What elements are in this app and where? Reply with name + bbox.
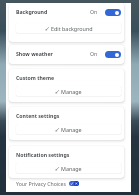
staticText: Notification settings — [16, 151, 70, 158]
staticText: Your Privacy Choices — [16, 180, 67, 187]
staticText: Show weather — [16, 50, 53, 57]
staticText: On — [90, 50, 98, 57]
staticText: Content settings — [16, 112, 60, 119]
staticText: Manage — [61, 126, 82, 133]
button[interactable]: Manage — [16, 163, 121, 173]
staticText: Manage — [61, 165, 82, 172]
staticText: Edit background — [51, 25, 93, 32]
button[interactable]: Manage — [16, 86, 121, 96]
button[interactable]: Toggle on — [105, 51, 121, 58]
staticText: Custom theme — [16, 74, 55, 81]
button[interactable]: Manage — [16, 124, 121, 134]
button[interactable]: Edit background — [16, 23, 121, 33]
staticText: On — [90, 8, 98, 15]
staticText: Background — [16, 8, 48, 15]
button[interactable]: Toggle on — [105, 9, 121, 16]
staticText: Manage — [61, 88, 82, 95]
button[interactable]: Your Privacy Choices — [69, 181, 79, 186]
